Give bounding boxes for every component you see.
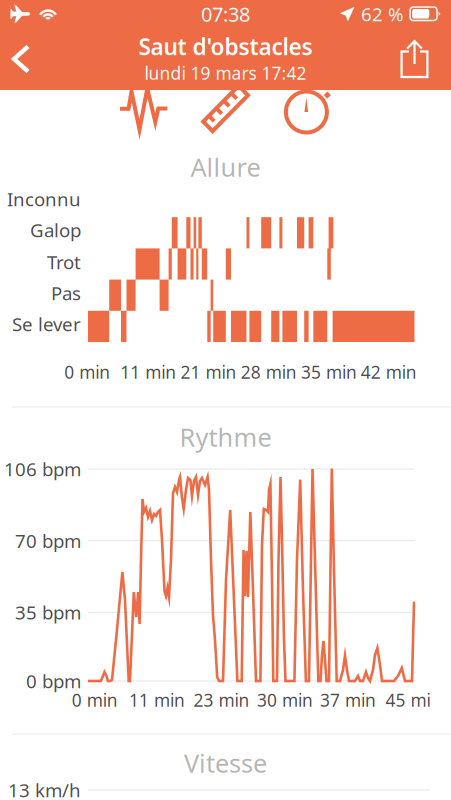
staticText: Galop	[30, 218, 81, 242]
staticText: 0 min	[64, 360, 110, 383]
staticText: 70 bpm	[15, 528, 81, 553]
staticText: Se lever	[12, 312, 81, 336]
staticText: 21 min	[180, 360, 236, 383]
button[interactable]: Share	[390, 28, 451, 90]
staticText: 23 min	[193, 688, 249, 711]
staticText: 45 mi	[385, 688, 430, 711]
staticText: 30 min	[257, 688, 313, 711]
staticText: Allure	[190, 150, 260, 184]
staticText: Rythme	[179, 420, 271, 454]
button[interactable]: Back	[0, 28, 42, 90]
staticText: 11 min	[120, 360, 176, 383]
staticText: Trot	[47, 250, 81, 274]
staticText: 35 min	[301, 360, 357, 383]
staticText: 11 min	[129, 688, 185, 711]
staticText: 13 km/h	[8, 778, 81, 800]
staticText: Inconnu	[7, 187, 81, 211]
staticText: 07:38	[201, 1, 250, 27]
staticText: Vitesse	[184, 746, 267, 780]
staticText: lundi 19 mars 17:42	[144, 61, 306, 84]
staticText: 0 bpm	[26, 669, 81, 693]
staticText: Saut d'obstacles	[138, 31, 312, 61]
staticText: 42 min	[361, 360, 417, 383]
staticText: 106 bpm	[4, 457, 81, 481]
staticText: 0 min	[72, 688, 118, 711]
staticText: 35 bpm	[15, 600, 81, 625]
staticText: 62 %	[361, 2, 404, 26]
staticText: Pas	[51, 281, 81, 305]
staticText: 37 min	[320, 688, 376, 711]
staticText: 28 min	[241, 360, 297, 383]
